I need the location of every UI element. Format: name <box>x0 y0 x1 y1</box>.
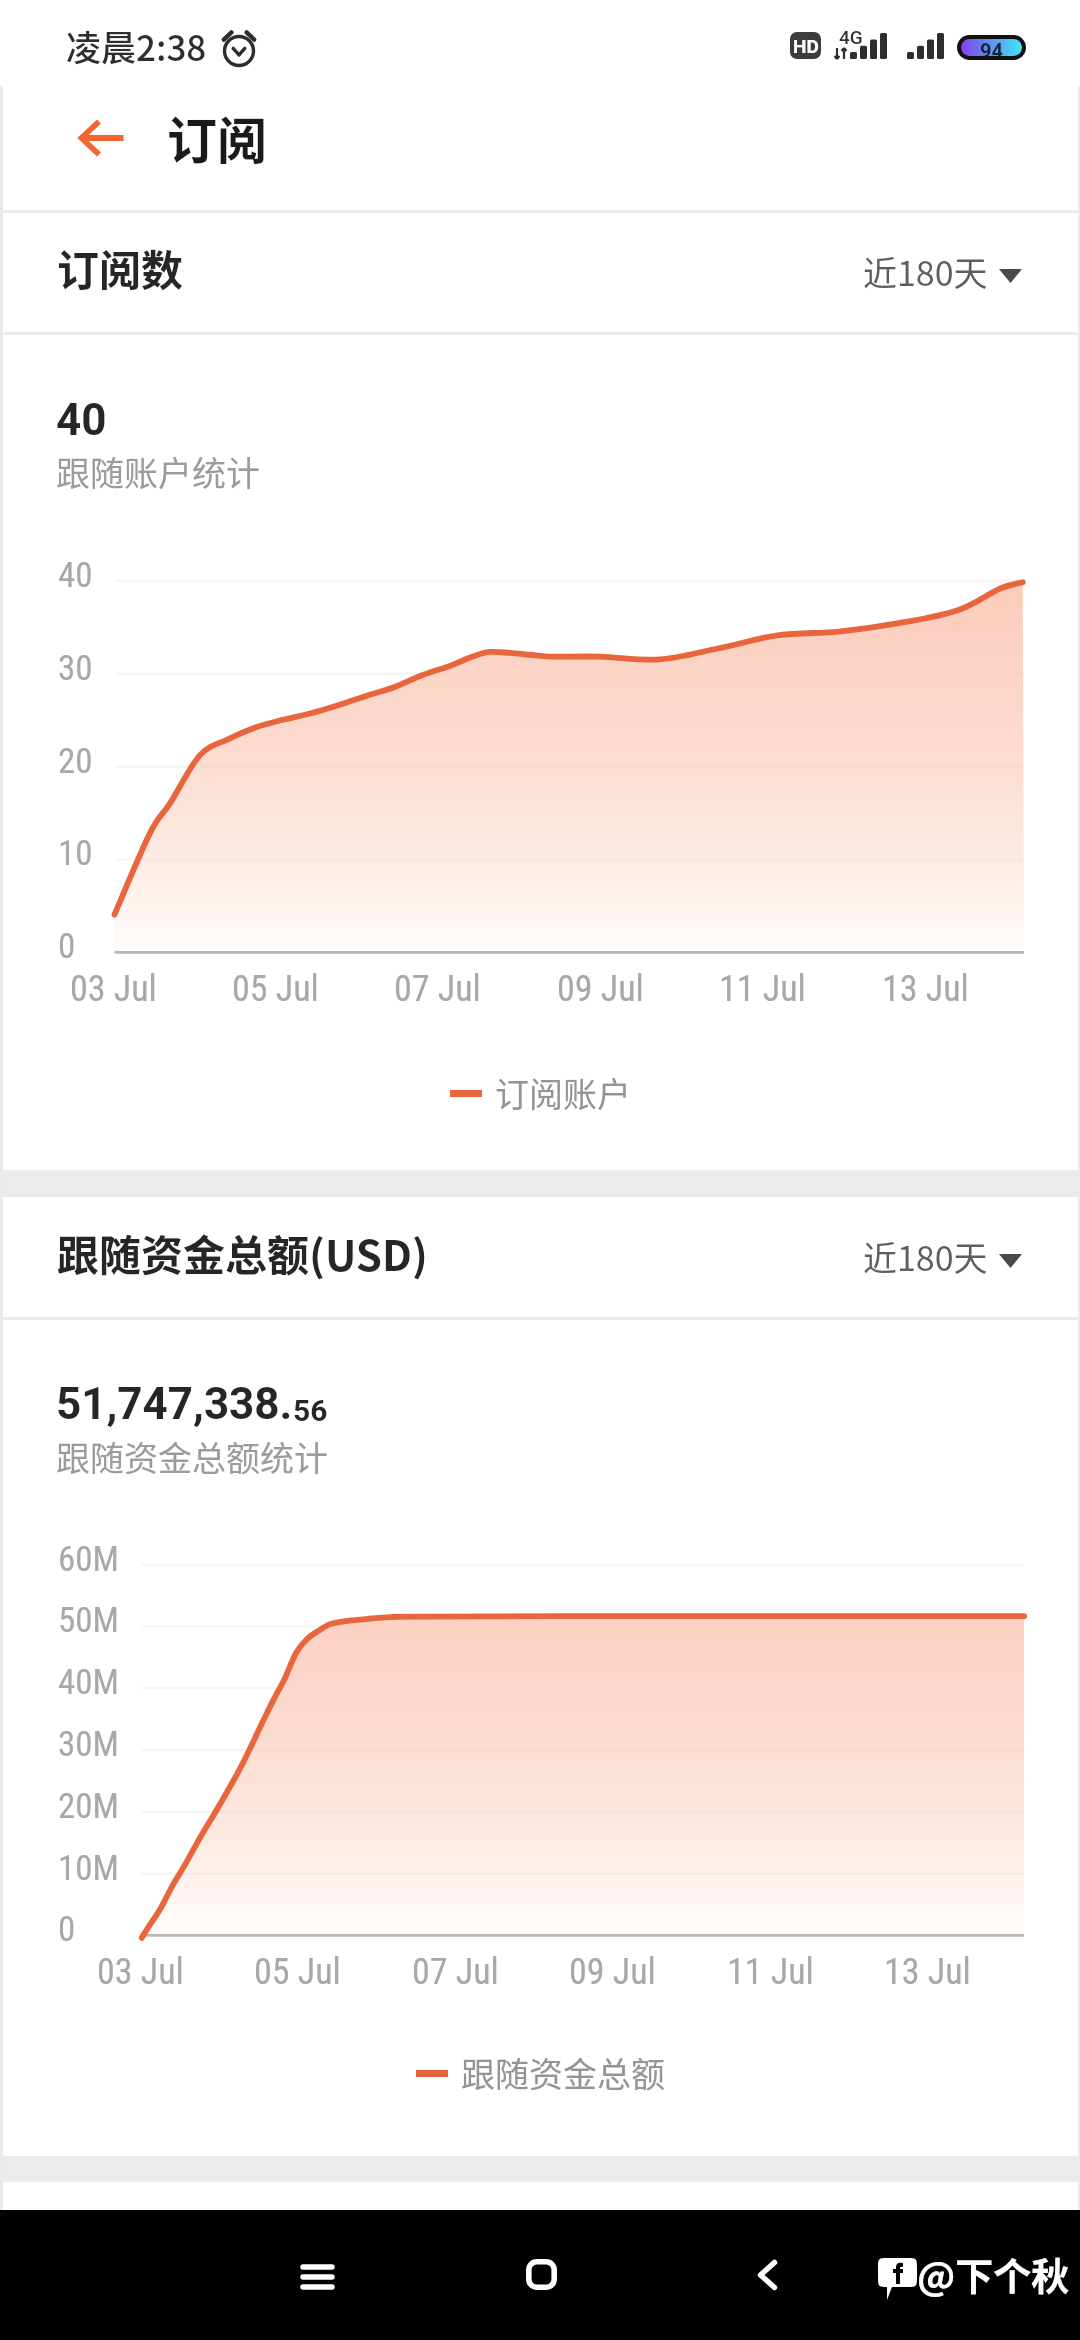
staticText: 07 Jul <box>394 968 481 1010</box>
staticText: 跟随资金总额(USD) <box>57 1222 428 1283</box>
staticText: 近180天 <box>863 247 988 296</box>
staticText: 40 <box>58 555 93 596</box>
staticText: 05 Jul <box>254 1951 341 1993</box>
staticText: 51,747,338. <box>56 1378 293 1430</box>
staticText: 03 Jul <box>97 1951 184 1993</box>
staticText: 09 Jul <box>569 1951 656 1993</box>
staticText: 跟随资金总额 <box>461 2048 665 2097</box>
staticText: 11 Jul <box>727 1951 814 1993</box>
staticText: 10 <box>58 833 93 874</box>
staticText: 56 <box>293 1393 328 1428</box>
staticText: 订阅数 <box>57 237 184 298</box>
staticText: 30 <box>58 648 93 689</box>
staticText: 50M <box>58 1600 119 1641</box>
staticText: 13 Jul <box>882 968 969 1010</box>
staticText: 60M <box>58 1539 119 1580</box>
staticText: HD <box>793 35 819 57</box>
staticText: 30M <box>58 1724 119 1765</box>
button[interactable]: Home <box>481 2214 601 2334</box>
staticText: 03 Jul <box>70 968 157 1010</box>
staticText: 10M <box>58 1848 119 1889</box>
button[interactable]: Back <box>0 96 157 211</box>
staticText: 11 Jul <box>719 968 806 1010</box>
staticText: 40 <box>56 394 107 446</box>
staticText: 09 Jul <box>557 968 644 1010</box>
staticText: 订阅 <box>167 101 267 173</box>
staticText: 94 <box>980 39 1003 56</box>
staticText: 07 Jul <box>412 1951 499 1993</box>
staticText: 05 Jul <box>232 968 319 1010</box>
button[interactable]: 近180天 <box>843 233 1041 310</box>
staticText: 近180天 <box>863 1232 988 1281</box>
staticText: 凌晨2:38 <box>66 20 207 71</box>
staticText: 20M <box>58 1786 119 1827</box>
staticText: @下个秋 <box>917 2246 1070 2301</box>
staticText: 订阅账户 <box>495 1068 631 1117</box>
button[interactable]: Recents <box>257 2217 377 2337</box>
button[interactable]: 近180天 <box>843 1218 1041 1295</box>
staticText: 跟随资金总额统计 <box>56 1432 328 1481</box>
staticText: 40M <box>58 1662 119 1703</box>
staticText: 4G <box>839 26 863 48</box>
staticText: 13 Jul <box>884 1951 971 1993</box>
button[interactable]: Back <box>707 2215 827 2335</box>
staticText: 20 <box>58 741 93 782</box>
staticText: 0 <box>58 1909 76 1950</box>
staticText: 跟随账户统计 <box>56 447 260 496</box>
staticText: 0 <box>58 926 76 967</box>
